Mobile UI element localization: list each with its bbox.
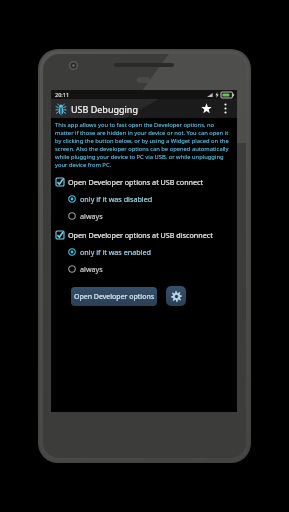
button[interactable]: always [51,260,237,277]
button[interactable]: only if it was enabled [51,243,237,260]
button[interactable]: Settings [166,286,186,306]
staticText: USB Debugging [71,103,138,115]
staticText: Open Developer options [74,292,155,302]
staticText: only if it was enabled [80,247,151,257]
button[interactable]: Open Developer options [71,287,157,306]
staticText: Open Developer options at USB disconnect [68,230,213,240]
staticText: always [80,264,103,274]
staticText: This app allows you to fast open the Dev… [55,121,233,169]
staticText: Open Developer options at USB connect [68,177,204,187]
staticText: always [80,211,103,221]
staticText: 20:11 [55,91,70,98]
button[interactable]: Open Developer options at USB connect [51,173,237,190]
button[interactable]: Open Developer options at USB disconnect [51,226,237,243]
button[interactable]: only if it was disabled [51,190,237,207]
button[interactable]: always [51,207,237,224]
staticText: only if it was disabled [80,194,153,204]
button[interactable]: Favorite [195,99,217,118]
button[interactable]: More options [217,99,233,118]
